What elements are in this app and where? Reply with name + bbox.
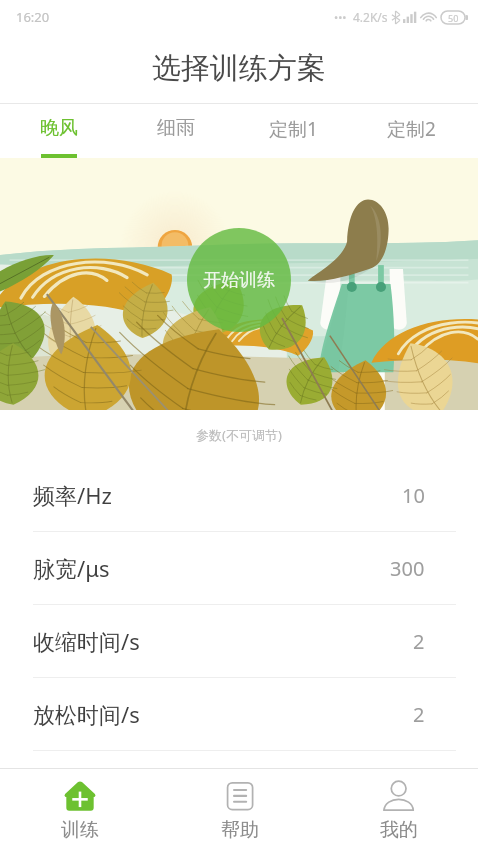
button[interactable]: 放松时间/s	[0, 678, 478, 750]
staticText: •••	[334, 10, 347, 25]
button[interactable]: 定制1	[234, 104, 352, 158]
staticText: 收缩时间/s	[33, 626, 140, 656]
staticText: 300	[390, 555, 425, 582]
button[interactable]: 脉宽/μs	[0, 532, 478, 604]
button[interactable]: 训练	[0, 769, 160, 850]
button[interactable]: 我的	[319, 769, 478, 850]
staticText: 2	[413, 628, 425, 655]
staticText: 16:20	[16, 8, 50, 26]
staticText: 4.2K/s	[353, 9, 388, 25]
button[interactable]: 晚风	[0, 104, 117, 158]
staticText: 开始训练	[203, 269, 275, 292]
button[interactable]: 开始训练	[187, 228, 291, 332]
staticText: 10	[402, 482, 425, 509]
button[interactable]: 频率/Hz	[0, 459, 478, 531]
staticText: 参数(不可调节)	[196, 426, 282, 444]
button[interactable]: 帮助	[160, 769, 319, 850]
button[interactable]: 细雨	[117, 104, 234, 158]
staticText: 我的	[380, 818, 418, 842]
staticText: 帮助	[221, 818, 259, 842]
button[interactable]: 收缩时间/s	[0, 605, 478, 677]
staticText: 选择训练方案	[152, 50, 326, 87]
staticText: 定制1	[269, 116, 318, 142]
staticText: 细雨	[157, 116, 195, 140]
staticText: 定制2	[387, 116, 436, 142]
staticText: 50	[448, 12, 459, 24]
staticText: 训练	[61, 818, 99, 842]
staticText: 晚风	[40, 116, 78, 140]
staticText: 放松时间/s	[33, 699, 140, 729]
staticText: 脉宽/μs	[33, 553, 110, 583]
button[interactable]: 定制2	[352, 104, 470, 158]
staticText: 频率/Hz	[33, 480, 112, 510]
staticText: 2	[413, 701, 425, 728]
